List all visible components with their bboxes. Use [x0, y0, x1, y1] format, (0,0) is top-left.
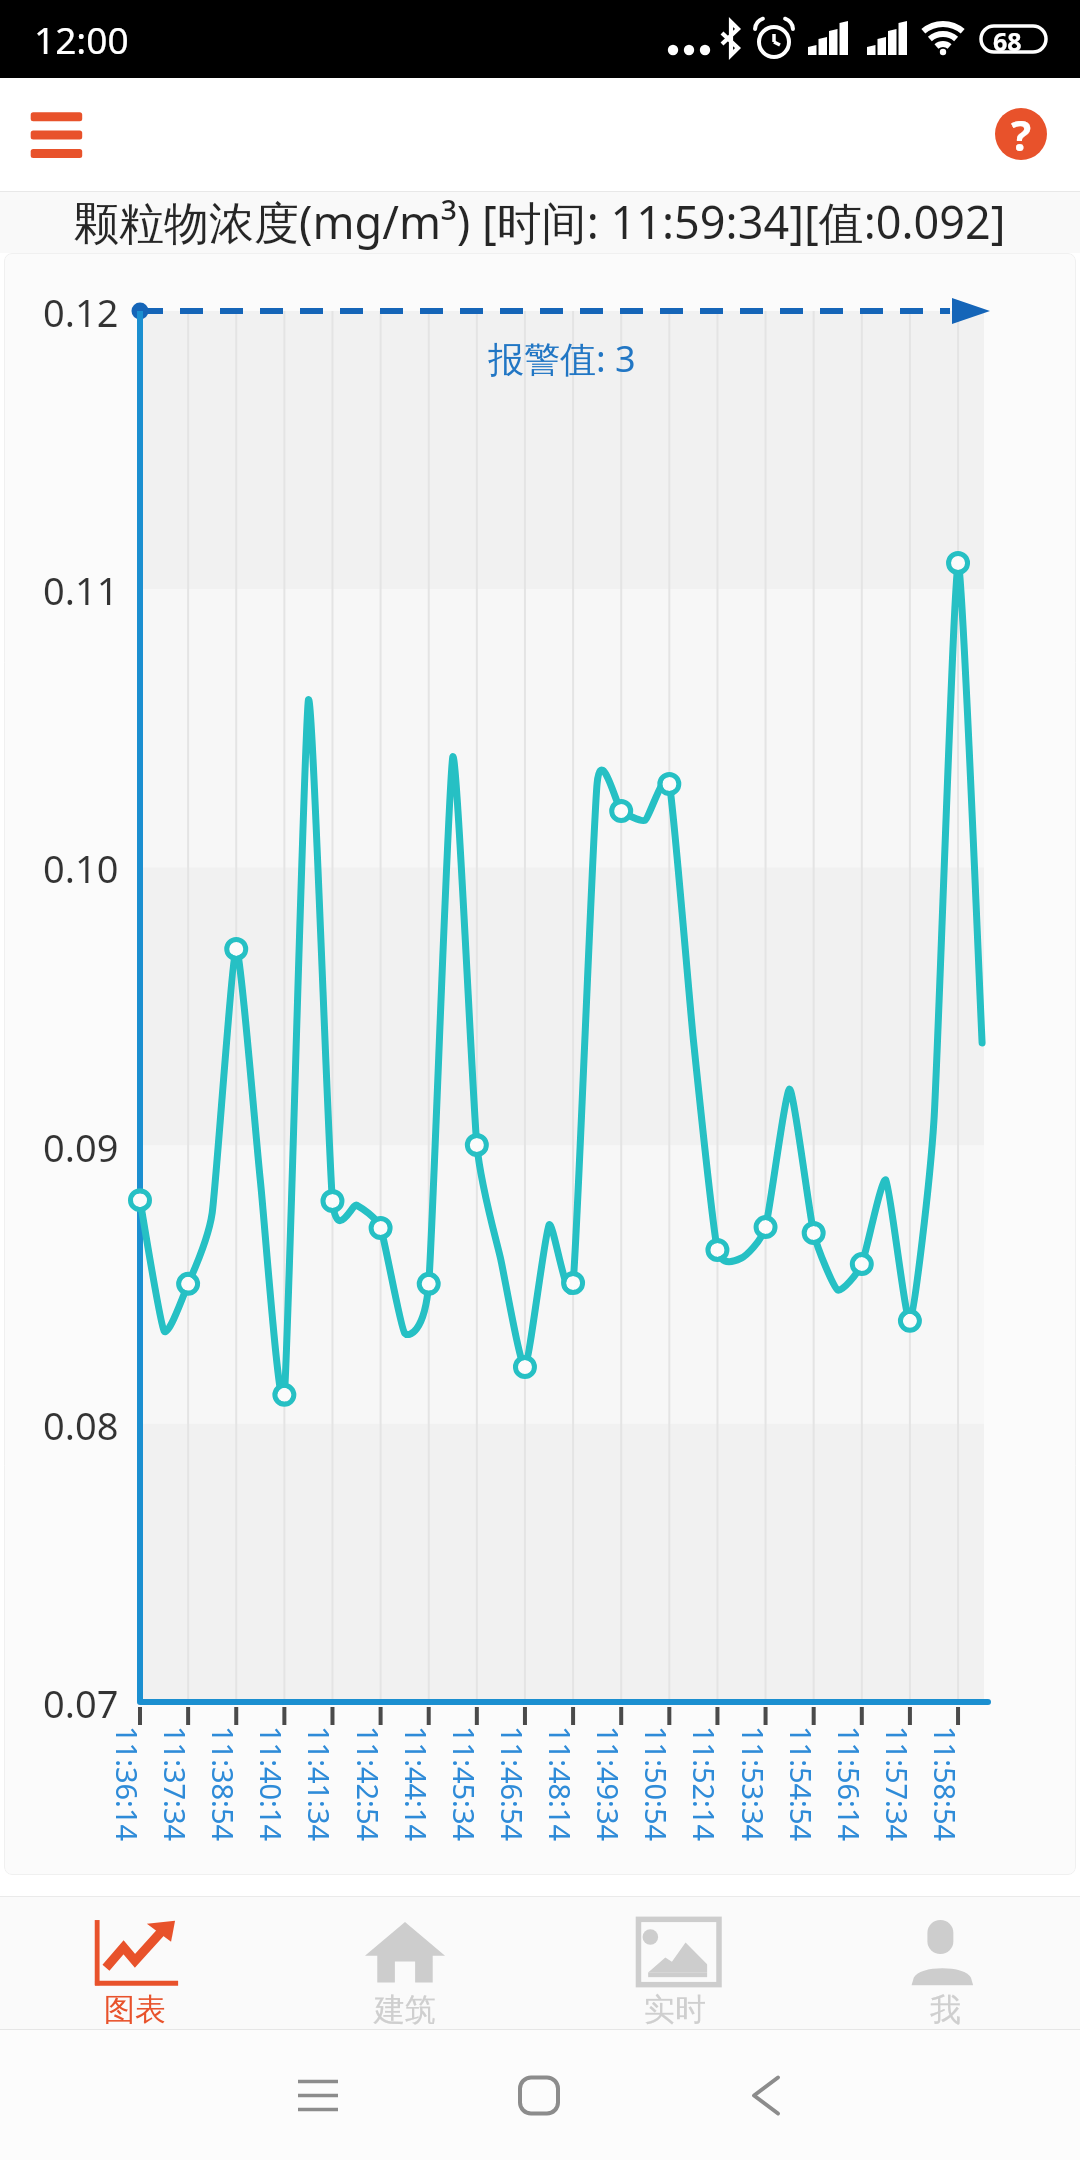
button[interactable]: Help	[995, 108, 1047, 160]
staticText: 实时	[644, 1990, 706, 2029]
staticText: 0.09	[43, 1121, 119, 1171]
staticText: ?	[1011, 108, 1032, 158]
staticText: 0.11	[43, 564, 119, 614]
button[interactable]: 建筑	[270, 1897, 540, 2029]
staticText: 图表	[104, 1990, 166, 2029]
staticText: 报警值: 3	[488, 334, 636, 383]
staticText: 0.08	[43, 1399, 119, 1449]
button[interactable]: 实时	[540, 1897, 810, 2029]
staticText: 0.10	[43, 842, 119, 892]
staticText: 建筑	[374, 1990, 436, 2029]
staticText: 12:00	[34, 14, 129, 64]
staticText: 68	[993, 24, 1022, 58]
staticText: 0.12	[43, 286, 119, 336]
staticText: 0.07	[43, 1677, 119, 1727]
button[interactable]: Menu	[14, 94, 98, 174]
staticText: 我	[930, 1990, 961, 2029]
button[interactable]: 图表	[0, 1897, 270, 2029]
button[interactable]: 我	[810, 1897, 1080, 2029]
staticText: 颗粒物浓度(mg/m³) [时间: 11:59:34][值:0.092]	[74, 191, 1006, 252]
